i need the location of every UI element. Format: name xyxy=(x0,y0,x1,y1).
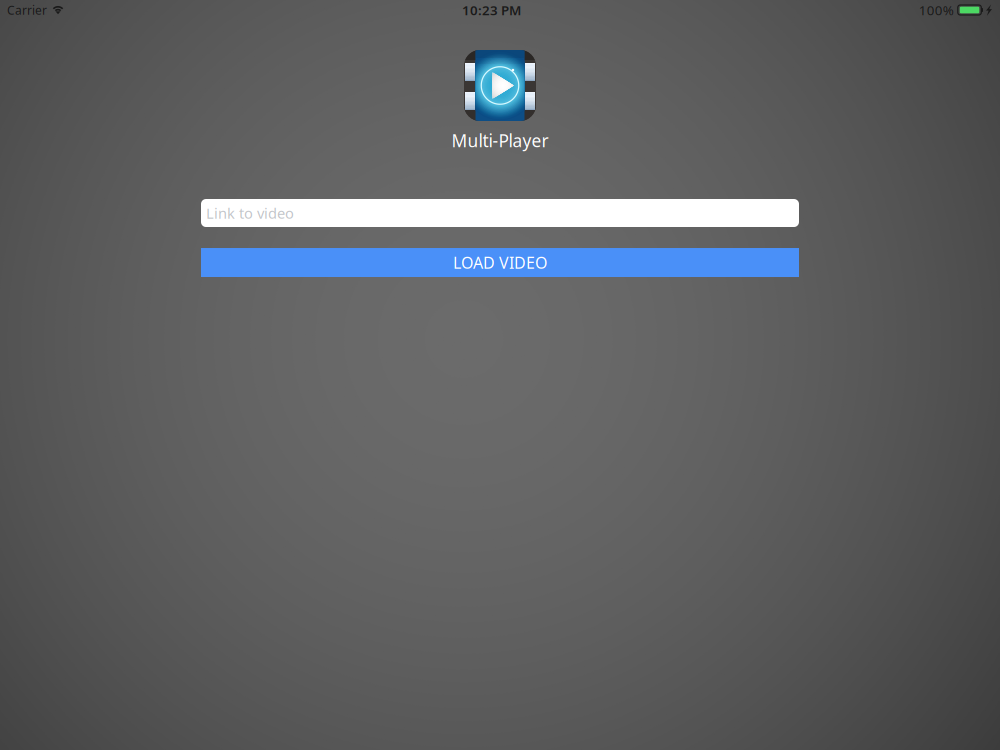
staticText: 100% xyxy=(919,1,954,19)
staticText: Multi-Player xyxy=(451,129,548,152)
staticText: Carrier xyxy=(7,2,47,18)
button[interactable]: LOAD VIDEO xyxy=(201,248,799,277)
staticText: LOAD VIDEO xyxy=(453,252,547,273)
staticText: 10:23 PM xyxy=(462,1,521,19)
staticText: Link to video xyxy=(206,203,294,223)
